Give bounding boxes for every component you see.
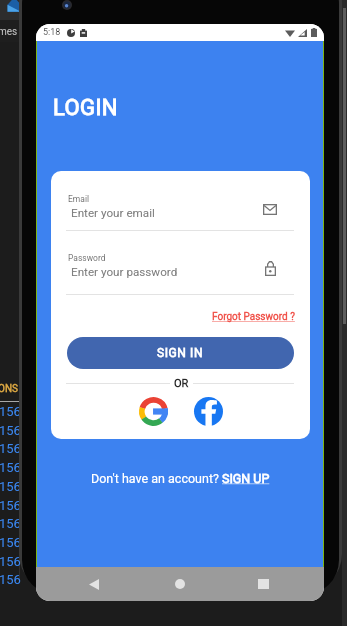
staticText: Don't have an account? bbox=[91, 471, 222, 486]
staticText: 156 bbox=[0, 498, 21, 513]
staticText: Enter your password bbox=[71, 265, 178, 279]
staticText: Password bbox=[68, 253, 106, 263]
staticText: Email bbox=[68, 194, 90, 204]
button[interactable]: SIGN IN bbox=[67, 337, 294, 369]
staticText: 156 bbox=[0, 441, 21, 456]
button[interactable]: Sign in with Google bbox=[139, 397, 168, 426]
staticText: 156 bbox=[0, 535, 21, 550]
button[interactable]: Home bbox=[162, 567, 198, 601]
staticText: 156 bbox=[0, 460, 21, 475]
staticText: 156 bbox=[0, 572, 21, 587]
staticText: 5:18 bbox=[43, 27, 61, 38]
staticText: 156 bbox=[0, 516, 21, 531]
button[interactable]: Forgot Password ? bbox=[210, 309, 297, 325]
staticText: 156 bbox=[0, 404, 21, 419]
button[interactable]: Recents bbox=[245, 567, 281, 601]
staticText: 156 bbox=[0, 423, 21, 438]
staticText: 156 bbox=[0, 479, 21, 494]
staticText: SIGN UP bbox=[222, 471, 270, 486]
staticText: Forgot Password ? bbox=[212, 311, 295, 323]
button[interactable]: Back bbox=[76, 567, 112, 601]
staticText: mes bbox=[0, 26, 18, 38]
staticText: OR bbox=[174, 377, 189, 390]
staticText: SIGN IN bbox=[157, 346, 204, 360]
button[interactable]: Don't have an account? bbox=[87, 467, 274, 490]
button[interactable]: Sign in with Facebook bbox=[194, 397, 223, 426]
staticText: Enter your email bbox=[71, 206, 155, 220]
staticText: 156 bbox=[0, 554, 21, 569]
staticText: LOGIN bbox=[53, 95, 118, 121]
staticText: ONS bbox=[0, 383, 18, 395]
